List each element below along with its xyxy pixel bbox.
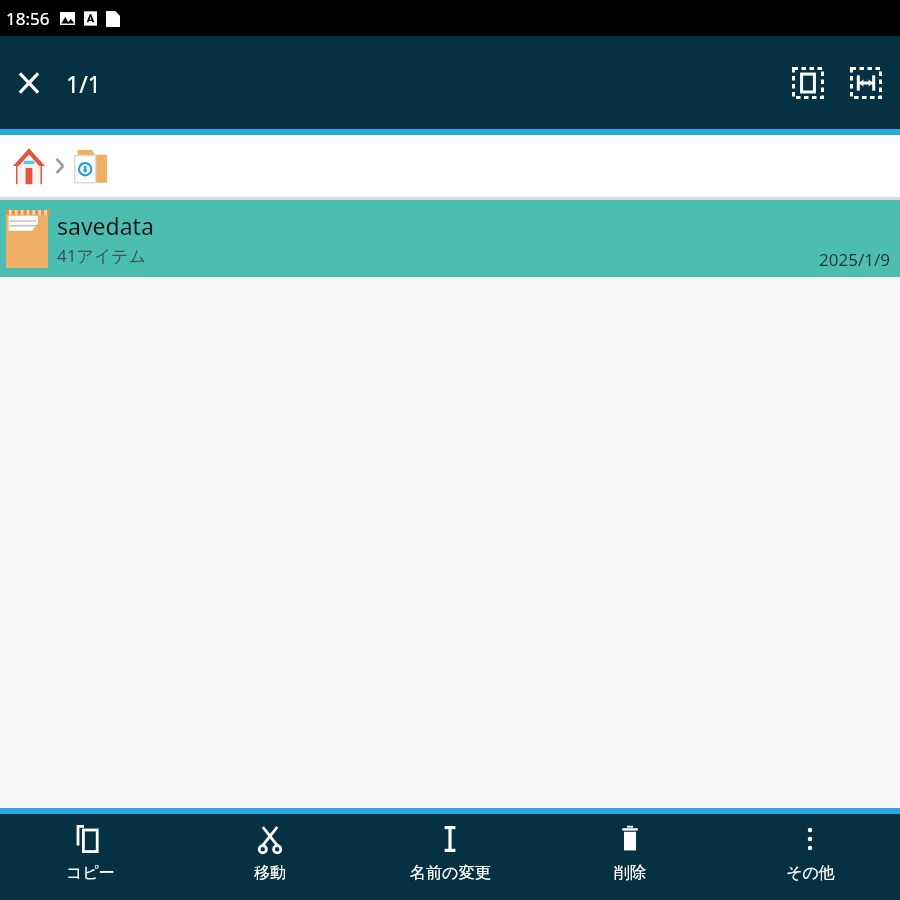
staticText: 18:56	[6, 7, 50, 30]
staticText: 2025/1/9	[819, 248, 890, 271]
button[interactable]: 移動	[180, 814, 360, 900]
button[interactable]: その他	[720, 814, 900, 900]
button[interactable]: Fit width	[840, 57, 892, 109]
staticText: savedata	[57, 210, 154, 241]
staticText: 1/1	[66, 68, 101, 99]
staticText: 41アイテム	[57, 244, 147, 267]
button[interactable]: savedata	[0, 200, 900, 277]
staticText: コピー	[66, 863, 115, 883]
button[interactable]: Download folder	[70, 144, 114, 188]
button[interactable]: Home	[8, 145, 50, 187]
button[interactable]: Select all	[782, 57, 834, 109]
button[interactable]: コピー	[0, 814, 180, 900]
staticText: その他	[786, 863, 835, 883]
button[interactable]: Close	[0, 54, 58, 112]
button[interactable]: 削除	[540, 814, 720, 900]
staticText: 削除	[614, 863, 646, 883]
staticText: 名前の変更	[410, 863, 491, 883]
button[interactable]: 名前の変更	[360, 814, 540, 900]
staticText: 移動	[254, 863, 286, 883]
